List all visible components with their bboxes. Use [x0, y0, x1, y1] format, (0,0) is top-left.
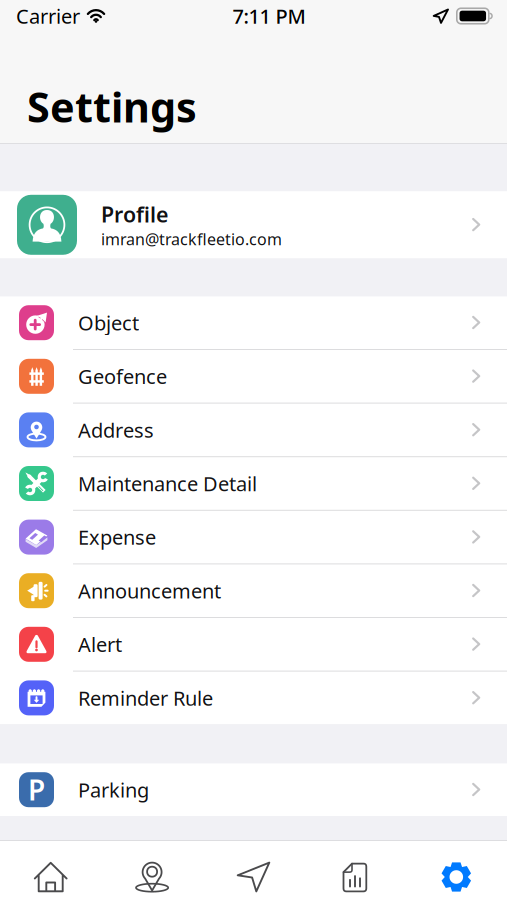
staticText: Settings: [27, 79, 197, 134]
button[interactable]: Places: [101, 841, 203, 900]
staticText: Carrier: [16, 3, 80, 29]
staticText: Address: [78, 417, 154, 443]
button[interactable]: Maintenance Detail: [0, 457, 507, 510]
button[interactable]: Geofence: [0, 350, 507, 403]
button[interactable]: Settings: [406, 841, 507, 900]
button[interactable]: Address: [0, 404, 507, 456]
staticText: Announcement: [78, 577, 221, 604]
staticText: P: [28, 771, 45, 808]
button[interactable]: Reminder Rule: [0, 672, 507, 724]
staticText: Alert: [78, 631, 122, 658]
staticText: imran@trackfleetio.com: [101, 228, 282, 249]
staticText: Profile: [101, 200, 168, 228]
staticText: Reminder Rule: [78, 685, 213, 711]
staticText: Object: [78, 309, 139, 336]
staticText: Geofence: [78, 363, 167, 390]
staticText: Parking: [78, 776, 149, 803]
button[interactable]: Profile: [0, 191, 507, 258]
staticText: Maintenance Detail: [78, 470, 257, 497]
button[interactable]: Announcement: [0, 564, 507, 617]
button[interactable]: Reports: [304, 841, 406, 900]
staticText: Expense: [78, 524, 156, 550]
button[interactable]: Expense: [0, 511, 507, 563]
button[interactable]: Object: [0, 296, 507, 349]
button[interactable]: Alert: [0, 618, 507, 671]
staticText: 7:11 PM: [232, 3, 305, 29]
button[interactable]: Track: [203, 841, 304, 900]
button[interactable]: Home: [0, 841, 101, 900]
button[interactable]: P: [0, 763, 507, 816]
